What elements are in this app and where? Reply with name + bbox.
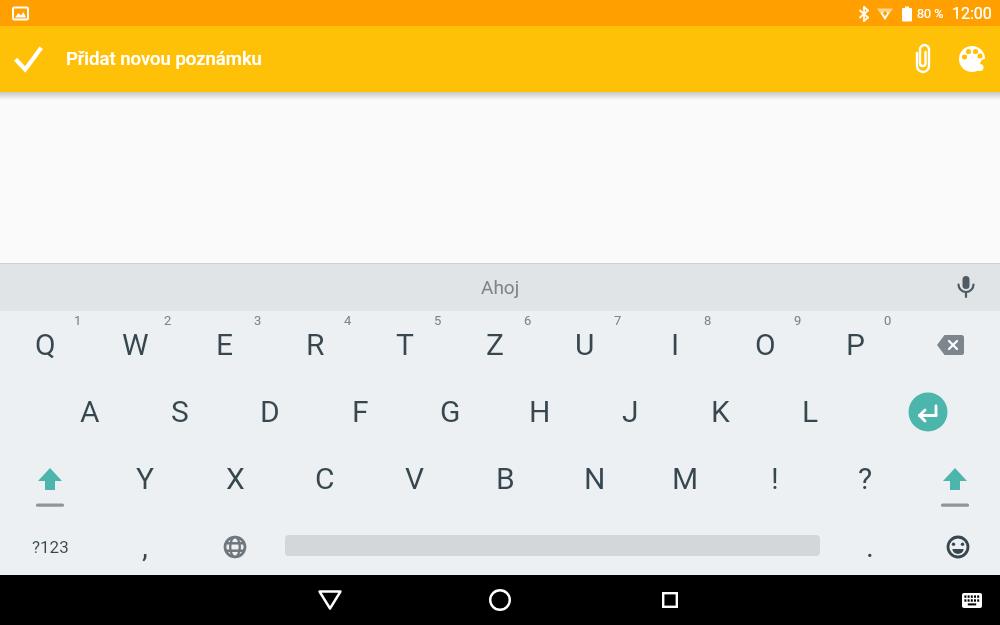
button[interactable]: D <box>225 378 315 445</box>
staticText: C <box>315 461 335 496</box>
button[interactable]: V <box>370 445 460 512</box>
staticText: 1 <box>74 313 82 328</box>
staticText: ?123 <box>32 537 69 557</box>
staticText: 8 <box>704 313 712 328</box>
staticText: 4 <box>344 313 352 328</box>
staticText: 6 <box>524 313 532 328</box>
button[interactable]: ? <box>820 445 910 512</box>
staticText: G <box>440 394 461 429</box>
staticText: D <box>260 394 280 429</box>
button[interactable] <box>855 378 1000 445</box>
staticText: X <box>226 461 245 496</box>
button[interactable] <box>910 445 1000 512</box>
button[interactable]: O <box>720 311 810 378</box>
button[interactable]: ! <box>730 445 820 512</box>
staticText: Z <box>486 327 504 362</box>
staticText: N <box>584 461 606 496</box>
staticText: 12:00 <box>952 4 992 23</box>
staticText: 7 <box>614 313 622 328</box>
staticText: Q <box>35 327 56 362</box>
button[interactable] <box>0 445 100 512</box>
button[interactable]: Y <box>100 445 190 512</box>
staticText: V <box>405 461 425 496</box>
button[interactable]: R <box>270 311 360 378</box>
button[interactable]: Z <box>450 311 540 378</box>
staticText: S <box>171 394 189 429</box>
button[interactable]: X <box>190 445 280 512</box>
button[interactable]: U <box>540 311 630 378</box>
button[interactable] <box>946 26 998 92</box>
button[interactable]: B <box>460 445 550 512</box>
button[interactable] <box>465 575 535 625</box>
button[interactable] <box>0 26 56 92</box>
button[interactable]: Q <box>0 311 90 378</box>
staticText: ? <box>858 461 873 496</box>
button[interactable]: M <box>640 445 730 512</box>
button[interactable]: G <box>405 378 495 445</box>
staticText: P <box>846 327 865 362</box>
staticText: F <box>352 394 369 429</box>
staticText: O <box>755 327 776 362</box>
staticText: 80 % <box>917 6 944 21</box>
button[interactable] <box>280 512 825 575</box>
staticText: W <box>122 327 149 362</box>
button[interactable]: Ahoj <box>481 276 520 298</box>
button[interactable]: T <box>360 311 450 378</box>
staticText: H <box>529 394 551 429</box>
staticText: B <box>496 461 515 496</box>
button[interactable]: L <box>765 378 855 445</box>
button[interactable]: . <box>825 512 915 575</box>
staticText: 3 <box>254 313 262 328</box>
staticText: 5 <box>434 313 442 328</box>
button[interactable]: A <box>45 378 135 445</box>
button[interactable]: P <box>810 311 900 378</box>
staticText: E <box>216 327 234 362</box>
button[interactable]: W <box>90 311 180 378</box>
staticText: 0 <box>884 313 892 328</box>
button[interactable] <box>944 263 1000 311</box>
button[interactable]: C <box>280 445 370 512</box>
staticText: U <box>575 327 595 362</box>
button[interactable] <box>900 311 1000 378</box>
staticText: R <box>306 327 325 362</box>
button[interactable] <box>944 575 1000 625</box>
staticText: T <box>396 327 414 362</box>
button[interactable]: ?123 <box>0 512 100 575</box>
staticText: I <box>671 327 680 362</box>
button[interactable] <box>915 512 1000 575</box>
staticText: ! <box>771 461 779 496</box>
button[interactable] <box>190 512 280 575</box>
button[interactable]: E <box>180 311 270 378</box>
button[interactable]: S <box>135 378 225 445</box>
staticText: J <box>622 394 639 429</box>
staticText: 9 <box>794 313 802 328</box>
button[interactable] <box>900 26 946 92</box>
button[interactable]: F <box>315 378 405 445</box>
button[interactable]: I <box>630 311 720 378</box>
staticText: Y <box>136 461 155 496</box>
button[interactable]: , <box>100 512 190 575</box>
button[interactable] <box>295 575 365 625</box>
staticText: Přidat novou poznámku <box>66 48 262 70</box>
button[interactable]: H <box>495 378 585 445</box>
button[interactable]: J <box>585 378 675 445</box>
staticText: . <box>866 529 874 564</box>
staticText: K <box>711 394 730 429</box>
staticText: M <box>672 461 699 496</box>
button[interactable]: K <box>675 378 765 445</box>
staticText: 2 <box>164 313 172 328</box>
staticText: A <box>80 394 100 429</box>
staticText: , <box>142 529 148 564</box>
button[interactable]: N <box>550 445 640 512</box>
button[interactable] <box>635 575 705 625</box>
staticText: L <box>802 394 819 429</box>
